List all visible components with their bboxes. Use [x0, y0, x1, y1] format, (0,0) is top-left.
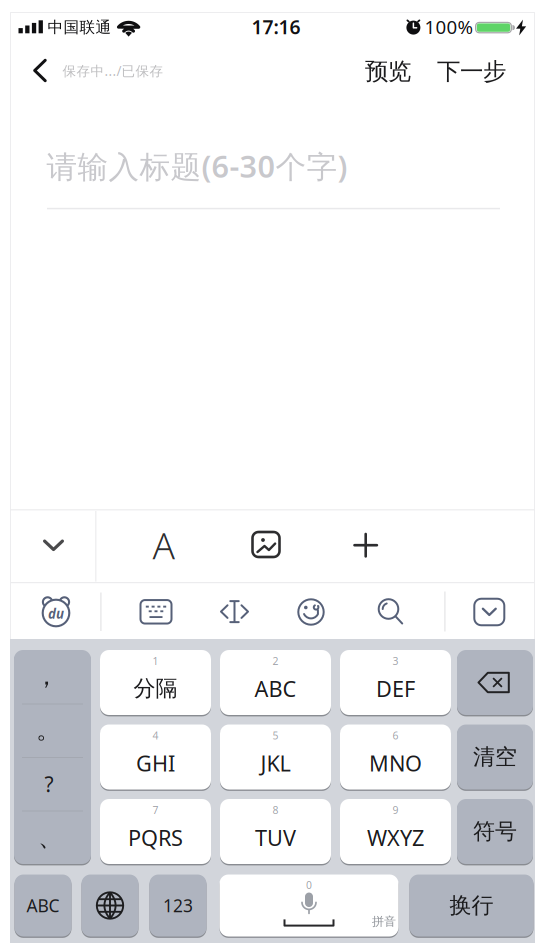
staticText: PQRS — [128, 823, 183, 852]
staticText: 1 — [152, 654, 158, 668]
button[interactable]: 。 — [14, 704, 91, 757]
button[interactable]: 5 — [220, 724, 331, 789]
button[interactable] — [140, 600, 171, 623]
button[interactable]: 预览 — [365, 57, 411, 86]
button[interactable] — [378, 598, 404, 624]
button[interactable]: 6 — [340, 724, 451, 789]
staticText: ABC — [26, 894, 59, 917]
button[interactable]: 7 — [100, 799, 211, 864]
button[interactable] — [219, 600, 249, 623]
staticText: 5 — [272, 728, 278, 743]
staticText: DEF — [376, 674, 415, 703]
staticText: 下一步 — [437, 57, 506, 86]
staticText: 预览 — [365, 57, 411, 86]
button[interactable]: 、 — [14, 811, 91, 864]
staticText: 分隔 — [133, 675, 177, 702]
staticText: 清空 — [473, 743, 517, 771]
staticText: 7 — [152, 803, 158, 817]
button[interactable]: A — [152, 520, 174, 570]
button[interactable] — [474, 599, 504, 625]
staticText: 6 — [392, 728, 398, 743]
staticText: 换行 — [449, 892, 493, 919]
staticText: 17:16 — [251, 14, 300, 40]
button[interactable] — [297, 598, 324, 625]
button[interactable] — [457, 650, 533, 715]
staticText: 符号 — [473, 818, 517, 845]
staticText: du — [48, 604, 64, 623]
staticText: 保存中.../已保存 — [62, 62, 163, 80]
button[interactable]: ? — [14, 757, 91, 810]
button[interactable]: ABC — [14, 874, 71, 936]
staticText: JKL — [260, 748, 290, 778]
button[interactable]: 下一步 — [437, 57, 506, 86]
staticText: 8 — [272, 803, 278, 817]
staticText: 、 — [38, 821, 63, 853]
staticText: 拼音 — [372, 914, 396, 929]
button[interactable]: 9 — [340, 799, 451, 864]
staticText: 请输入标题(6-30个字) — [47, 145, 348, 187]
staticText: 0 — [306, 878, 312, 892]
button[interactable] — [81, 874, 138, 936]
button[interactable]: du — [39, 595, 73, 628]
staticText: ? — [44, 770, 53, 798]
staticText: 2 — [272, 654, 278, 668]
staticText: 。 — [36, 714, 61, 745]
staticText: 123 — [163, 894, 193, 917]
button[interactable]: 4 — [100, 724, 211, 789]
button[interactable]: 0 — [219, 874, 398, 936]
button[interactable]: 8 — [220, 799, 331, 864]
staticText: WXYZ — [367, 823, 424, 852]
button[interactable] — [43, 539, 64, 551]
staticText: 100% — [424, 14, 473, 40]
staticText: A — [152, 520, 174, 570]
button[interactable]: 3 — [340, 650, 451, 715]
button[interactable]: 清空 — [457, 724, 533, 789]
staticText: ， — [34, 660, 59, 692]
button[interactable]: 1 — [100, 650, 211, 715]
staticText: ABC — [254, 674, 296, 703]
staticText: 4 — [152, 728, 158, 743]
staticText: 3 — [392, 654, 398, 668]
button[interactable] — [252, 532, 279, 557]
button[interactable]: ， — [14, 650, 91, 703]
button[interactable]: 2 — [220, 650, 331, 715]
button[interactable] — [354, 534, 377, 557]
staticText: MNO — [369, 748, 422, 778]
button[interactable]: 123 — [149, 874, 206, 936]
staticText: 中国联通 — [47, 17, 111, 37]
button[interactable] — [33, 58, 47, 82]
staticText: GHI — [136, 748, 175, 778]
button[interactable]: 符号 — [457, 799, 533, 864]
staticText: TUV — [255, 823, 296, 852]
button[interactable]: 换行 — [409, 874, 533, 936]
staticText: 9 — [392, 803, 398, 817]
